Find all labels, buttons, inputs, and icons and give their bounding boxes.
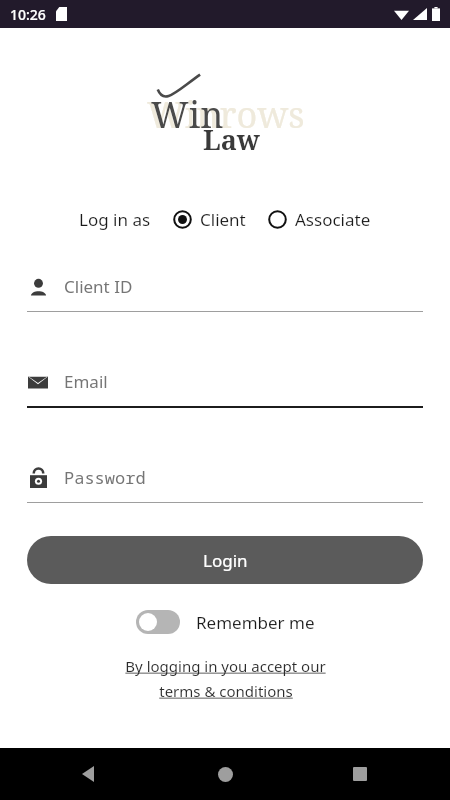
staticText: Email	[64, 370, 108, 393]
staticText: Password	[64, 466, 146, 489]
button[interactable]: Back	[66, 750, 114, 798]
button[interactable]: Password	[27, 466, 423, 503]
staticText: Client	[200, 208, 246, 231]
button[interactable]: Recent apps	[336, 750, 384, 798]
staticText: Remember me	[196, 611, 315, 634]
staticText: Win	[151, 90, 224, 139]
button[interactable]: Client ID	[27, 275, 423, 312]
button[interactable]: By logging in you accept our	[125, 656, 326, 701]
staticText: 10:26	[10, 5, 46, 24]
staticText: terms & conditions	[159, 681, 293, 701]
staticText: Log in as	[79, 208, 151, 231]
staticText: Login	[203, 549, 248, 572]
staticText: By logging in you accept our	[125, 656, 326, 676]
button[interactable]: Email	[27, 370, 423, 408]
button[interactable]: Remember me	[136, 610, 315, 634]
staticText: Winrows	[147, 90, 305, 139]
button[interactable]: Client	[173, 208, 246, 231]
button[interactable]: Associate	[268, 208, 371, 231]
button[interactable]: Home	[201, 750, 249, 798]
button[interactable]: Login	[27, 536, 423, 584]
staticText: Law	[203, 121, 260, 158]
staticText: Associate	[295, 208, 371, 231]
staticText: Client ID	[64, 275, 133, 298]
